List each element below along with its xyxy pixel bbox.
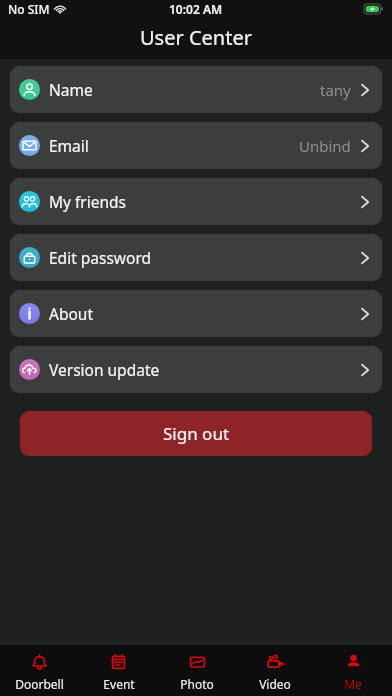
staticText: Photo [180, 676, 214, 692]
staticText: Doorbell [15, 676, 64, 692]
button[interactable]: My friends [10, 178, 382, 225]
staticText: Sign out [163, 422, 230, 445]
button[interactable]: Event [79, 645, 158, 696]
button[interactable]: Me [314, 645, 392, 696]
button[interactable]: Email [10, 122, 382, 169]
button[interactable]: Name [10, 66, 382, 113]
staticText: About [49, 303, 93, 324]
staticText: Event [103, 676, 135, 692]
button[interactable]: Photo [158, 645, 236, 696]
staticText: Video [259, 676, 291, 692]
staticText: tany [320, 80, 351, 100]
button[interactable]: Sign out [20, 411, 372, 456]
staticText: Edit password [49, 247, 152, 268]
staticText: Me [344, 676, 362, 692]
button[interactable]: About [10, 290, 382, 337]
button[interactable]: Edit password [10, 234, 382, 281]
staticText: User Center [140, 24, 252, 51]
button[interactable]: Video [236, 645, 314, 696]
button[interactable]: Version update [10, 346, 382, 393]
button[interactable]: Doorbell [0, 645, 79, 696]
staticText: Email [49, 135, 89, 156]
staticText: 10:02 AM [169, 1, 223, 17]
staticText: Unbind [299, 136, 351, 156]
staticText: Version update [49, 359, 160, 380]
staticText: No SIM [8, 1, 50, 17]
staticText: My friends [49, 191, 127, 212]
staticText: Name [49, 79, 93, 100]
